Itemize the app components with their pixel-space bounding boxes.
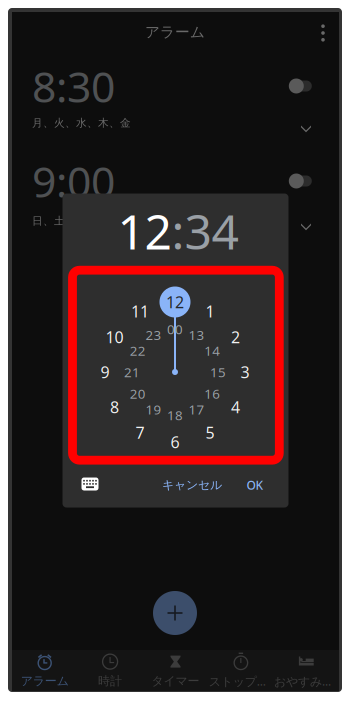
staticText: 11 (131, 301, 149, 322)
staticText: 7 (135, 422, 144, 443)
staticText: 20 (130, 385, 146, 402)
staticText: 2 (231, 326, 240, 348)
staticText: 3 (240, 361, 249, 383)
staticText: 月、火、水、木、金 (32, 116, 131, 129)
button[interactable]: アラーム (12, 650, 77, 691)
staticText: 17 (188, 400, 204, 418)
button[interactable]: タイマー (143, 650, 208, 691)
staticText: アラーム (21, 674, 69, 688)
staticText: 16 (204, 385, 220, 402)
staticText: 18 (167, 406, 183, 424)
staticText: 14 (204, 342, 220, 359)
staticText: OK (246, 477, 263, 493)
staticText: 1 (205, 301, 214, 322)
staticText: 21 (124, 363, 140, 381)
staticText: 22 (130, 342, 146, 359)
staticText: 9 (100, 361, 109, 383)
staticText: 19 (145, 400, 161, 418)
staticText: 00 (167, 320, 183, 338)
staticText: 9:00 (32, 153, 115, 209)
staticText: 23 (145, 326, 161, 344)
staticText: 13 (188, 326, 204, 344)
button[interactable]: おやすみ時… (274, 650, 339, 691)
staticText: ストップウ… (209, 673, 273, 689)
staticText: タイマー (151, 674, 199, 688)
staticText: 4 (231, 396, 240, 418)
button[interactable]: ストップウ… (208, 650, 274, 691)
staticText: 日、土 (32, 214, 65, 227)
staticText: 8:30 (32, 58, 115, 114)
staticText: 8 (110, 396, 119, 418)
staticText: :34 (171, 199, 238, 263)
button[interactable]: Switch to text input (73, 469, 107, 499)
staticText: アラーム (145, 23, 205, 41)
staticText: 15 (210, 363, 226, 381)
button[interactable]: Toggle alarm (282, 166, 320, 196)
staticText: おやすみ時… (274, 673, 338, 689)
button[interactable]: Add alarm (147, 585, 203, 641)
button[interactable]: 時計 (77, 650, 143, 691)
button[interactable]: キャンセル (155, 470, 229, 500)
staticText: 6 (170, 431, 179, 453)
button[interactable]: OK (236, 470, 274, 500)
staticText: 時計 (98, 674, 122, 688)
staticText: キャンセル (162, 478, 222, 492)
staticText: 12 (117, 199, 171, 263)
staticText: 10 (105, 326, 123, 348)
staticText: 5 (205, 422, 214, 443)
staticText: 12 (166, 291, 184, 313)
button[interactable]: More options (306, 16, 340, 50)
button[interactable]: Toggle alarm (282, 71, 320, 101)
